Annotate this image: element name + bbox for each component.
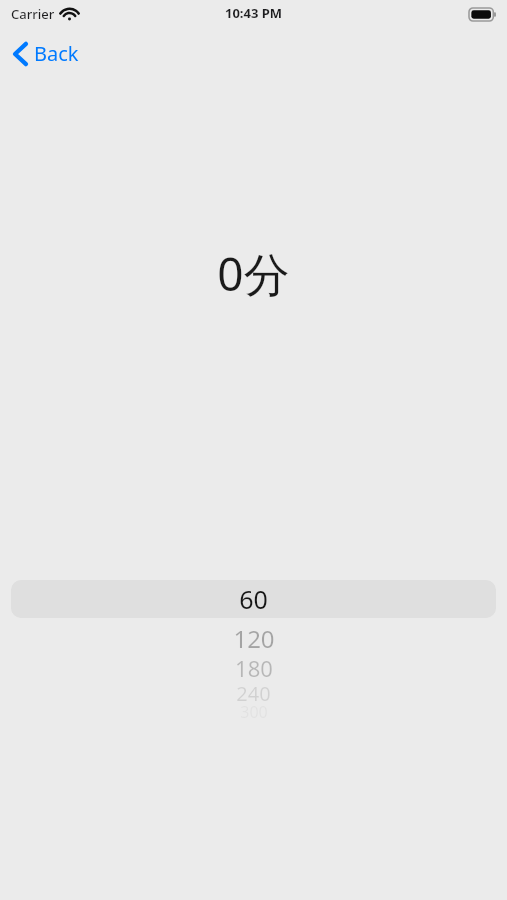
staticText: 10:43 PM [225,4,283,22]
staticText: Carrier [11,5,55,23]
staticText: 240 [236,680,271,705]
staticText: Back [34,40,79,67]
button[interactable] [11,580,496,618]
button[interactable]: 120 [0,622,507,652]
button[interactable]: Back [8,34,85,73]
staticText: 0分 [217,242,290,305]
other: Back [14,43,27,65]
button[interactable]: 180 [0,653,507,681]
staticText: 60 [239,582,268,616]
staticText: 180 [235,653,273,681]
staticText: 120 [233,622,275,652]
